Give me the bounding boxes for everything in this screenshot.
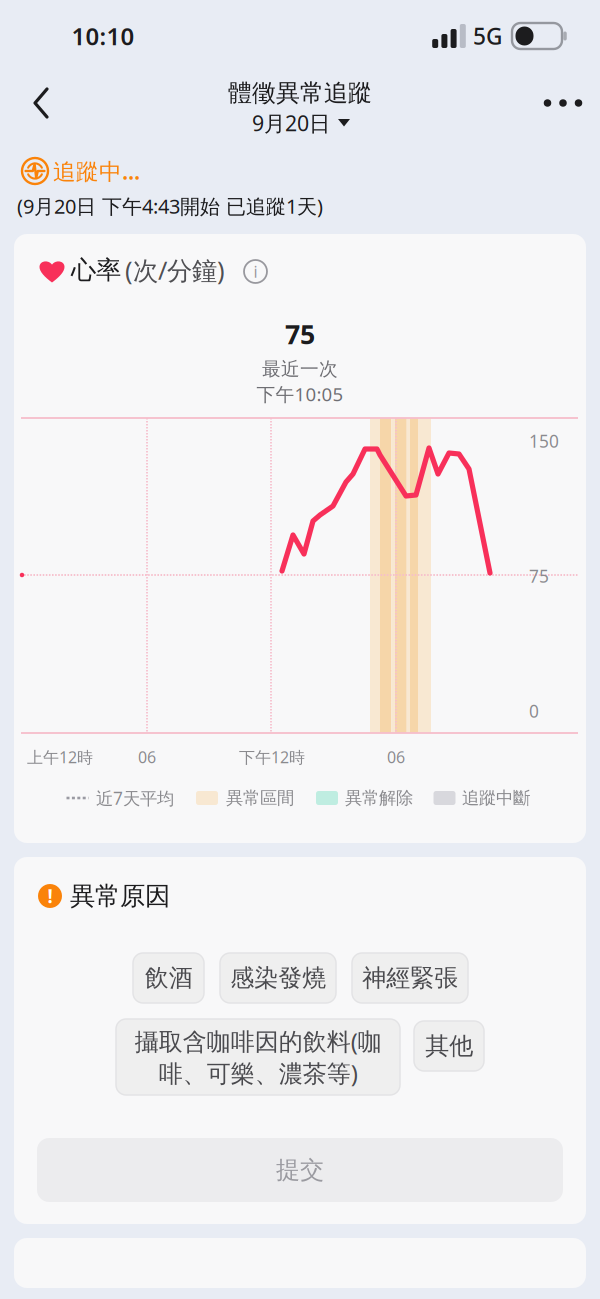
button[interactable]: 感染發燒 [220,953,336,1003]
staticText: i [253,261,257,282]
staticText: 異常解除 [345,787,413,809]
staticText: 0 [529,699,539,722]
staticText: 追蹤中斷 [462,787,530,809]
staticText: 下午10:05 [256,382,343,406]
staticText: 其他 [425,1031,473,1061]
staticText: 攝取含咖啡因的飲料(咖 啡、可樂、濃茶等) [134,1025,381,1089]
staticText: 感染發燒 [230,963,326,993]
staticText: 上午12時 [27,746,93,768]
button[interactable]: 神經緊張 [352,953,468,1003]
staticText: 10:10 [71,20,134,52]
staticText: 150 [529,429,559,452]
staticText: 飲酒 [144,963,192,993]
staticText: 近7天平均 [96,786,174,809]
staticText: (9月20日 下午4:43開始 已追蹤1天) [17,193,323,219]
staticText: 9月20日 [252,109,330,137]
staticText: (次/分鐘) [125,253,225,287]
staticText: 06 [387,746,405,768]
staticText: 神經緊張 [362,963,458,993]
staticText: 下午12時 [239,746,305,768]
button[interactable]: 攝取含咖啡因的飲料(咖 啡、可樂、濃茶等) [116,1019,400,1095]
button[interactable]: 提交 [37,1138,563,1202]
staticText: 異常區間 [226,787,294,809]
staticText: 06 [138,746,156,768]
button[interactable]: 說明 [244,260,267,283]
button[interactable]: 飲酒 [133,953,204,1003]
staticText: 提交 [276,1155,324,1185]
staticText: ! [47,884,52,908]
button[interactable]: 返回 [14,76,68,130]
button[interactable]: 9月20日 [241,105,361,141]
button[interactable]: 其他 [414,1021,484,1071]
staticText: 異常原因 [70,880,170,911]
staticText: 心率 [71,254,121,285]
staticText: 體徵異常追蹤 [228,78,372,108]
staticText: 追蹤中... [53,156,140,186]
staticText: 5G [473,21,502,51]
staticText: 75 [529,564,549,587]
staticText: 75 [285,316,315,352]
button[interactable]: 更多 [534,76,592,130]
staticText: 最近一次 [262,357,338,380]
